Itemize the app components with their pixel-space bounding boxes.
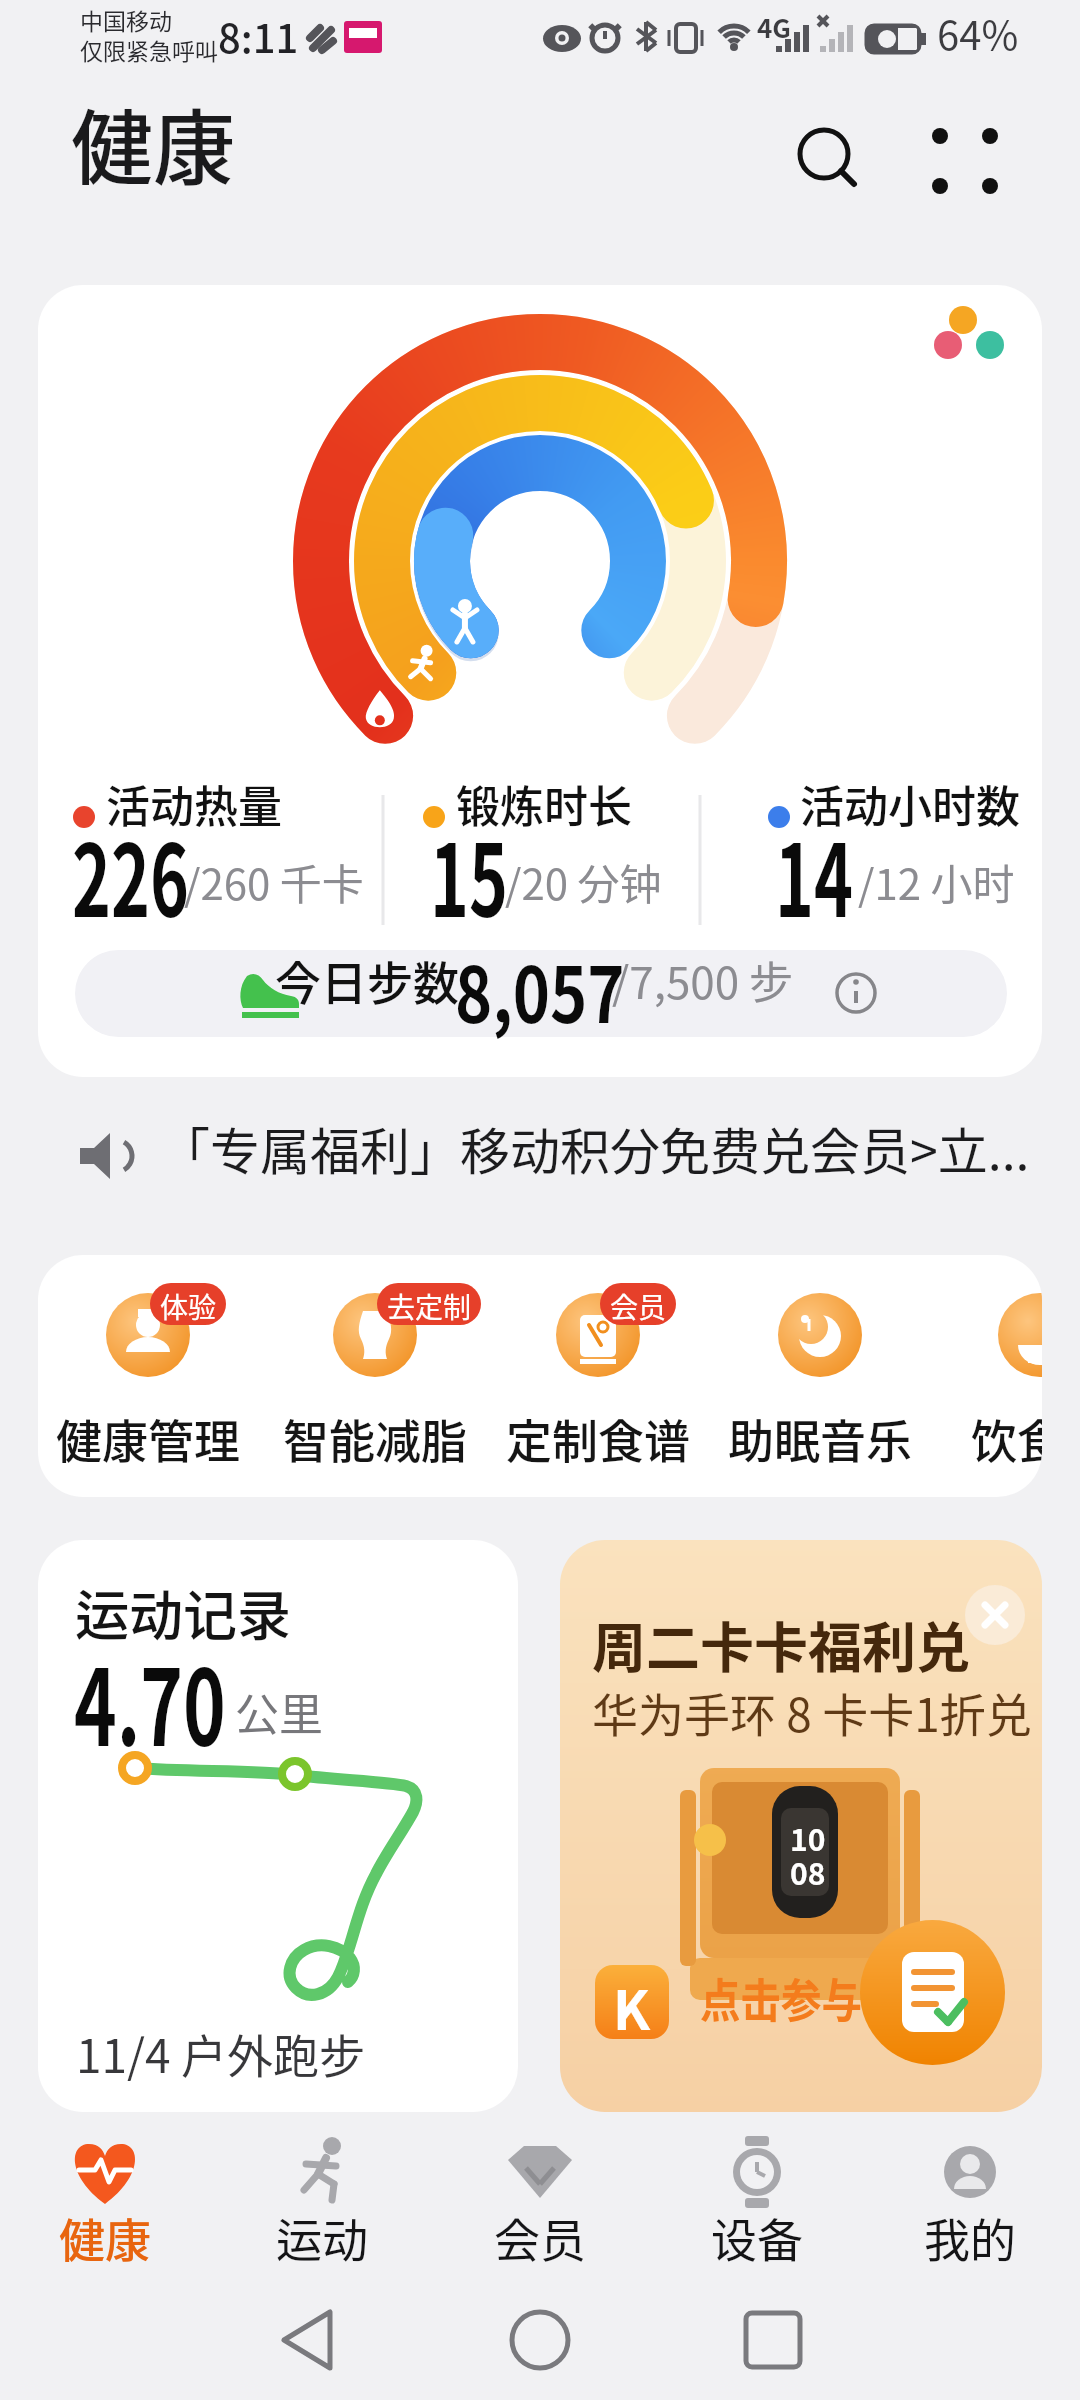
button[interactable] <box>860 1920 1005 2065</box>
button[interactable]: 健康管理 <box>38 1273 263 1483</box>
button[interactable] <box>450 2290 630 2390</box>
button[interactable]: 助眠音乐 <box>705 1273 935 1483</box>
button[interactable]: 运动 <box>242 2130 402 2280</box>
staticText: 4G <box>757 8 791 46</box>
staticText: 运动 <box>276 2204 368 2271</box>
staticText: 体验 <box>160 1286 217 1325</box>
staticText: 健康 <box>71 83 236 202</box>
staticText: 活动热量 <box>106 772 282 836</box>
button[interactable]: 我的 <box>890 2130 1050 2280</box>
staticText: 「专属福利」移动积分免费兑会员>立... <box>160 1112 1030 1184</box>
staticText: 智能减脂 <box>283 1405 467 1472</box>
staticText: 锻炼时长 <box>456 772 632 836</box>
staticText: 会员 <box>494 2204 586 2271</box>
button[interactable]: 饮食记 <box>925 1273 1042 1483</box>
staticText: 助眠音乐 <box>728 1405 912 1472</box>
staticText: K <box>613 1967 651 2039</box>
staticText: 4.70 <box>74 1624 226 1776</box>
staticText: 15 <box>430 801 508 946</box>
staticText: /12 小时 <box>858 851 1015 912</box>
staticText: 去定制 <box>387 1286 472 1325</box>
button[interactable]: K <box>595 1965 669 2039</box>
staticText: 中国移动 <box>80 3 172 36</box>
button[interactable]: 智能减脂 <box>260 1273 490 1483</box>
button[interactable] <box>790 120 866 196</box>
staticText: 08 <box>790 1850 826 1893</box>
button[interactable]: 运动记录 <box>38 1540 518 2112</box>
staticText: 8,057 <box>455 934 625 1045</box>
button[interactable] <box>0 1118 1080 1218</box>
staticText: 我的 <box>924 2204 1016 2271</box>
staticText: 健康管理 <box>56 1405 240 1472</box>
staticText: 11/4 户外跑步 <box>76 2020 365 2087</box>
button[interactable]: 周二卡卡福利兑 <box>560 1540 1042 2112</box>
staticText: 64% <box>937 4 1019 62</box>
staticText: 华为手环 8 卡卡1折兑 <box>592 1679 1032 1746</box>
button[interactable] <box>240 2290 420 2390</box>
staticText: 226 <box>72 801 189 946</box>
staticText: 10 <box>790 1816 826 1859</box>
staticText: 点击参与 <box>700 1964 862 2031</box>
staticText: 14 <box>775 801 853 946</box>
staticText: 今日步数 <box>275 947 459 1014</box>
staticText: 公里 <box>235 1680 323 1744</box>
staticText: 运动记录 <box>75 1573 291 1651</box>
staticText: 仅限紧急呼叫 <box>80 33 218 66</box>
staticText: 饮食记 <box>971 1405 1042 1472</box>
staticText: 定制食谱 <box>506 1405 690 1472</box>
staticText: /260 千卡 <box>184 851 364 912</box>
button[interactable]: 活动热量 <box>38 285 1042 1077</box>
staticText: 活动小时数 <box>800 772 1020 836</box>
button[interactable] <box>75 950 1007 1037</box>
button[interactable] <box>920 120 1006 206</box>
button[interactable] <box>660 2290 840 2390</box>
staticText: /7,500 步 <box>612 948 794 1012</box>
staticText: /20 分钟 <box>505 851 662 912</box>
button[interactable] <box>965 1585 1025 1645</box>
button[interactable]: 健康 <box>25 2130 185 2280</box>
button[interactable]: 设备 <box>677 2130 837 2280</box>
staticText: 设备 <box>711 2204 803 2271</box>
staticText: 健康 <box>59 2204 151 2271</box>
staticText: 周二卡卡福利兑 <box>592 1605 970 1683</box>
staticText: 8:11 <box>218 7 299 65</box>
staticText: 会员 <box>610 1286 667 1325</box>
button[interactable]: 定制食谱 <box>483 1273 713 1483</box>
button[interactable]: 会员 <box>460 2130 620 2280</box>
